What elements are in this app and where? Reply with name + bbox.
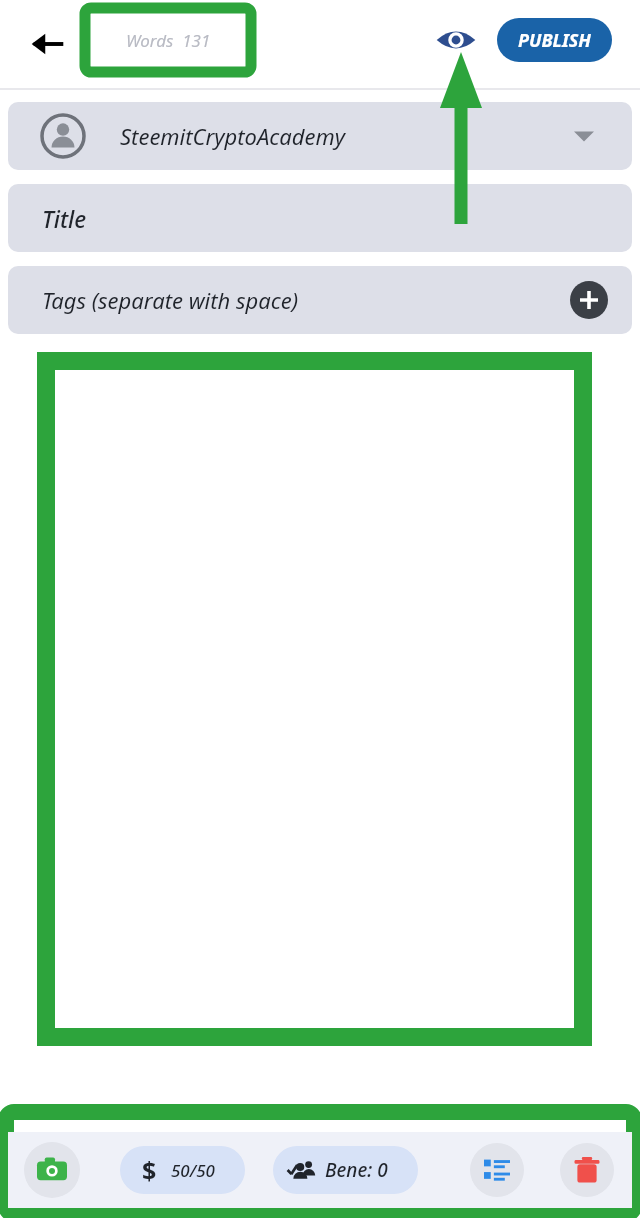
button[interactable]: Formatting: [470, 1143, 524, 1197]
button[interactable]: Delete: [560, 1143, 614, 1197]
staticText: Words 131: [126, 29, 211, 52]
button[interactable]: $: [120, 1146, 245, 1194]
button[interactable]: Preview: [432, 16, 480, 64]
staticText: Bene: 0: [325, 1157, 388, 1183]
staticText: Title: [42, 203, 87, 234]
staticText: $: [142, 1153, 157, 1187]
button[interactable]: Bene: 0: [273, 1146, 418, 1194]
button[interactable]: Words 131: [93, 16, 243, 64]
staticText: SteemitCryptoAcademy: [120, 121, 346, 151]
staticText: 50/50: [171, 1159, 215, 1182]
button[interactable]: SteemitCryptoAcademy: [8, 102, 632, 170]
button[interactable]: Back: [22, 18, 74, 70]
button[interactable]: Add tag: [570, 281, 608, 319]
staticText: PUBLISH: [518, 28, 591, 53]
button[interactable]: [46, 361, 583, 1037]
button[interactable]: Add photo: [24, 1142, 80, 1198]
button[interactable]: PUBLISH: [497, 18, 612, 62]
staticText: Tags (separate with space): [42, 285, 299, 315]
button[interactable]: Tags (separate with space): [8, 266, 632, 334]
button[interactable]: Title: [8, 184, 632, 252]
